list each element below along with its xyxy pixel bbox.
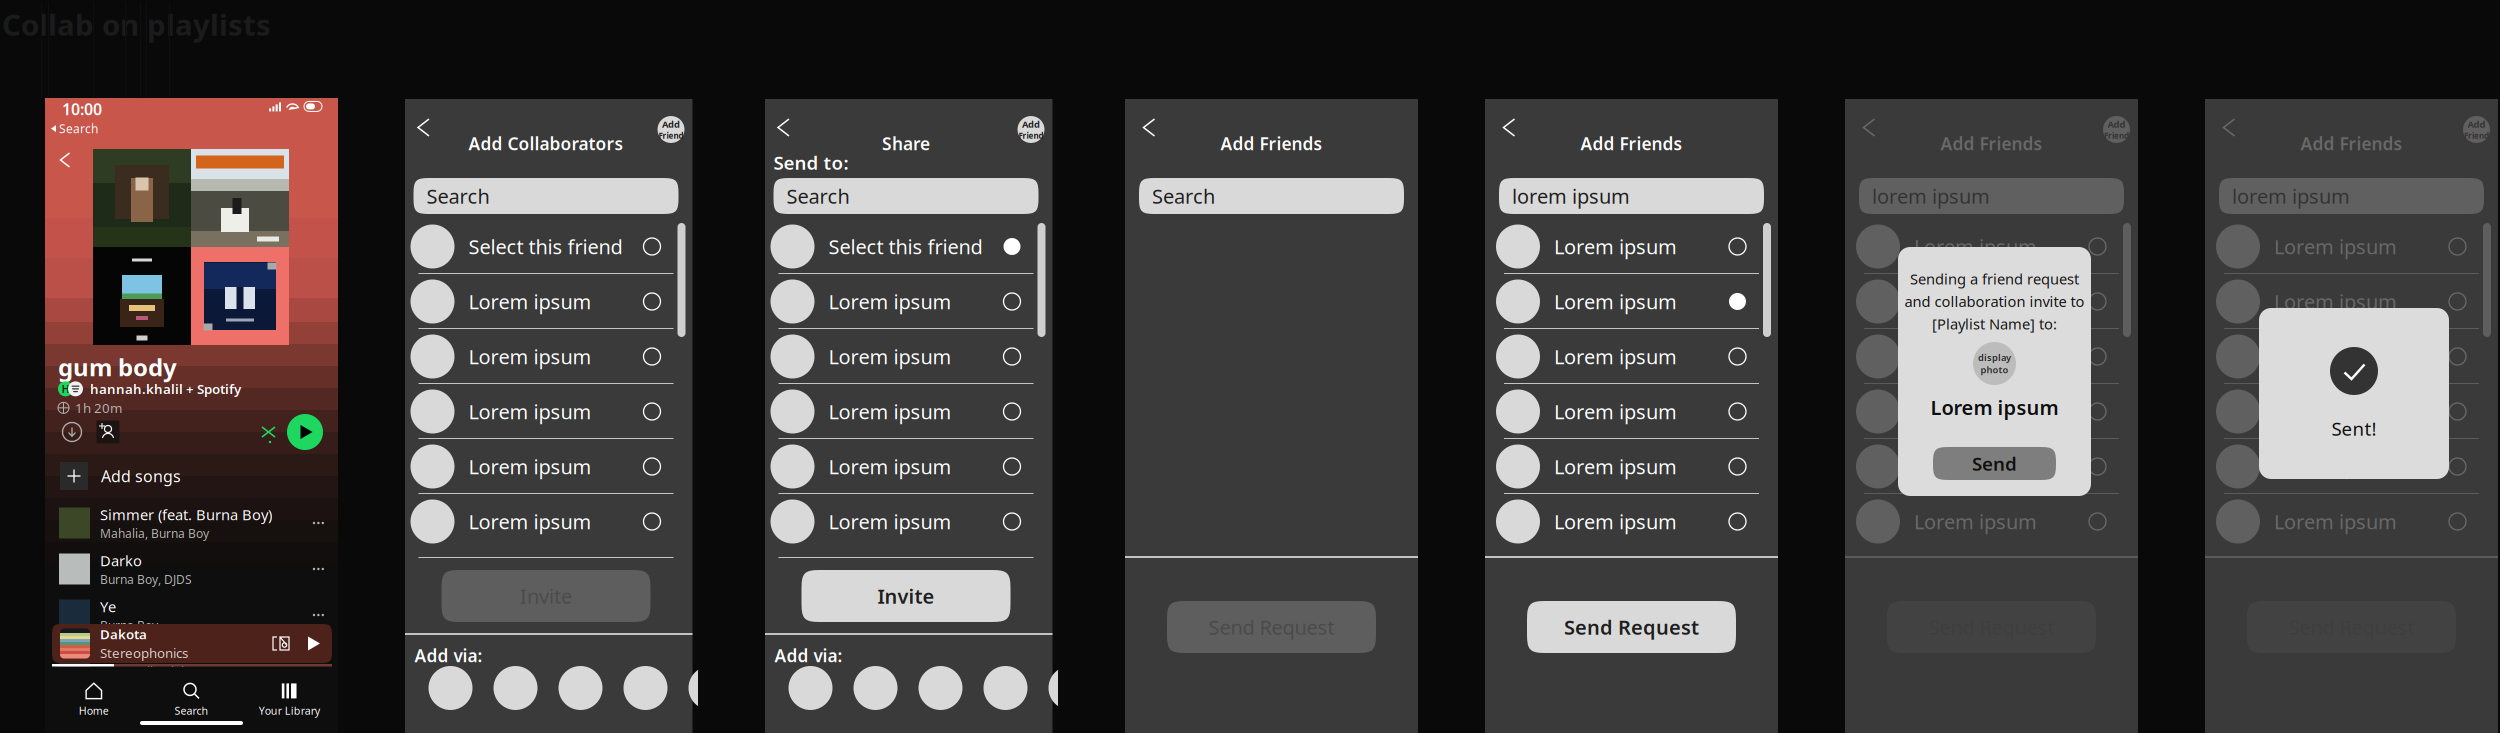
button[interactable]: Ycee — [45, 638, 338, 684]
button[interactable]: Search — [1139, 178, 1404, 214]
button[interactable]: Download — [59, 419, 85, 445]
staticText: [Playlist Name] to: — [1932, 314, 2057, 333]
staticText: Add — [662, 118, 680, 130]
button[interactable]: Darko — [45, 546, 338, 592]
button[interactable]: Home — [45, 680, 143, 720]
staticText: Add Friends — [1220, 132, 1322, 155]
button[interactable]: Lorem ipsum — [1845, 439, 2138, 494]
staticText: display — [1978, 351, 2011, 363]
button[interactable]: Your Library — [240, 680, 338, 720]
button[interactable]: Lorem ipsum — [399, 439, 692, 494]
staticText: Send Request — [1564, 614, 1699, 640]
button[interactable]: Search — [143, 680, 240, 720]
button[interactable]: Back — [1137, 112, 1161, 142]
staticText: Add — [2107, 118, 2125, 130]
staticText: Lorem ipsum — [2274, 288, 2397, 315]
button[interactable]: Lorem ipsum — [759, 494, 1052, 549]
button[interactable]: Add Friend — [1017, 116, 1044, 143]
button[interactable]: Lorem ipsum — [1845, 329, 2138, 384]
staticText: Friend — [2464, 130, 2489, 141]
staticText: Add — [1022, 118, 1040, 130]
button[interactable]: Add collaborators — [93, 417, 123, 447]
button[interactable]: Send Request — [1527, 601, 1736, 653]
staticText: hannah.khalil + Spotify — [90, 380, 241, 398]
button[interactable]: Lorem ipsum — [2205, 494, 2498, 549]
button[interactable]: Simmer (feat. Burna Boy) — [45, 500, 338, 546]
staticText: Select this friend — [468, 233, 622, 260]
button[interactable]: Back — [1497, 112, 1521, 142]
button[interactable]: Invite — [441, 570, 650, 622]
staticText: Simmer (feat. Burna Boy) — [100, 505, 272, 524]
staticText: Mahalia, Burna Boy — [100, 525, 209, 541]
button[interactable]: Lorem ipsum — [1845, 219, 2138, 274]
button[interactable]: Play — [286, 413, 324, 451]
button[interactable]: Lorem ipsum — [1845, 384, 2138, 439]
button[interactable]: Lorem ipsum — [1485, 329, 1778, 384]
button[interactable]: Add Friend — [2463, 116, 2490, 143]
button[interactable]: Add songs — [45, 452, 338, 500]
button[interactable]: Back — [53, 147, 77, 173]
button[interactable]: Lorem ipsum — [1485, 219, 1778, 274]
staticText: Lorem ipsum — [828, 453, 951, 480]
button[interactable]: Lorem ipsum — [399, 329, 692, 384]
staticText: Lorem ipsum — [1554, 508, 1677, 535]
button[interactable]: Lorem ipsum — [1485, 439, 1778, 494]
button[interactable]: Shuffle — [256, 419, 282, 445]
button[interactable]: Ye — [45, 592, 338, 638]
button[interactable]: Back — [771, 112, 795, 142]
staticText: Stereophonics — [100, 644, 188, 662]
button[interactable]: Select this friend — [759, 219, 1052, 274]
button[interactable]: Add Friend — [657, 116, 684, 143]
button[interactable]: Lorem ipsum — [2205, 274, 2498, 329]
button[interactable]: Add Friend — [2103, 116, 2130, 143]
button[interactable]: Lorem ipsum — [1485, 384, 1778, 439]
staticText: Add Friends — [2300, 132, 2402, 155]
staticText: Lorem ipsum — [828, 508, 951, 535]
staticText: 10:00 — [62, 98, 102, 120]
button[interactable]: Search — [773, 178, 1038, 214]
button[interactable]: Dakota — [52, 624, 332, 663]
staticText: Sent! — [2331, 416, 2376, 441]
button[interactable]: Send — [1933, 447, 2056, 480]
button[interactable]: Back — [2217, 112, 2241, 142]
button[interactable]: Invite — [801, 570, 1010, 622]
staticText: Lorem ipsum — [1914, 453, 2037, 480]
button[interactable]: Lorem ipsum — [759, 329, 1052, 384]
staticText: Burna Boy, DJDS — [100, 571, 192, 587]
staticText: lorem ipsum — [2232, 183, 2350, 209]
button[interactable]: Lorem ipsum — [399, 494, 692, 549]
button[interactable]: Lorem ipsum — [1485, 274, 1778, 329]
staticText: Lorem ipsum — [2274, 508, 2397, 535]
button[interactable]: Lorem ipsum — [2205, 439, 2498, 494]
staticText: Lorem ipsum — [828, 343, 951, 370]
button[interactable]: Send Request — [1167, 601, 1376, 653]
button[interactable]: Lorem ipsum — [759, 439, 1052, 494]
button[interactable]: Search — [413, 178, 678, 214]
button[interactable]: Lorem ipsum — [1845, 494, 2138, 549]
button[interactable]: Lorem ipsum — [399, 274, 692, 329]
staticText: Send Request — [1208, 614, 1334, 640]
staticText: Invite — [877, 583, 934, 609]
staticText: Lorem ipsum — [2274, 233, 2397, 260]
button[interactable]: Lorem ipsum — [2205, 219, 2498, 274]
button[interactable]: lorem ipsum — [1859, 178, 2124, 214]
button[interactable]: Select this friend — [399, 219, 692, 274]
button[interactable]: Lorem ipsum — [399, 384, 692, 439]
button[interactable]: Lorem ipsum — [1845, 274, 2138, 329]
staticText: Add Friends — [1940, 132, 2042, 155]
button[interactable]: Lorem ipsum — [2205, 329, 2498, 384]
button[interactable]: lorem ipsum — [1499, 178, 1764, 214]
button[interactable]: Lorem ipsum — [2205, 384, 2498, 439]
button[interactable]: Lorem ipsum — [759, 384, 1052, 439]
button[interactable]: lorem ipsum — [2219, 178, 2484, 214]
button[interactable]: Back — [1857, 112, 1881, 142]
button[interactable]: Lorem ipsum — [1485, 494, 1778, 549]
staticText: Select this friend — [828, 233, 982, 260]
staticText: lorem ipsum — [1872, 183, 1990, 209]
button[interactable]: Lorem ipsum — [759, 274, 1052, 329]
staticText: 1h 20m — [75, 399, 122, 417]
button[interactable]: Back — [411, 112, 435, 142]
